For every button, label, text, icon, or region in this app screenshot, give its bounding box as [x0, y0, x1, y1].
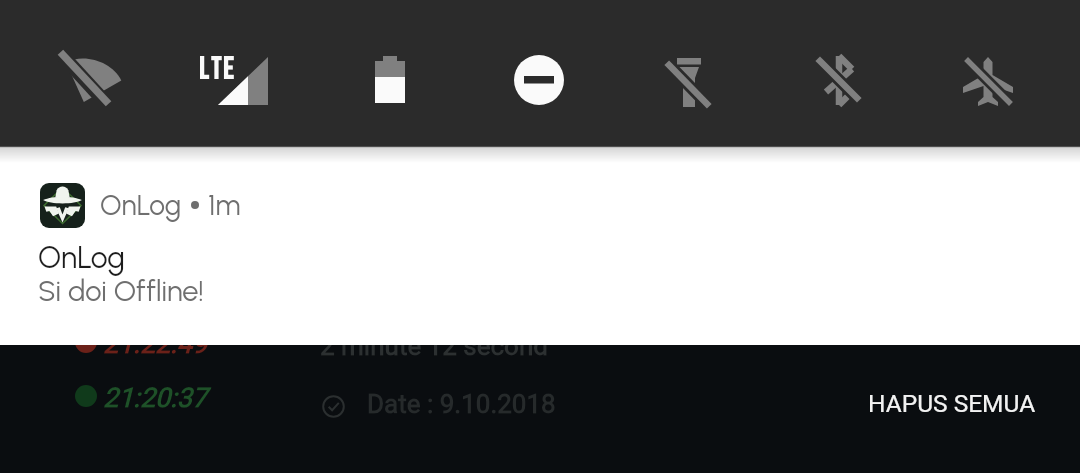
- staticText: Si doi Offline!: [38, 273, 204, 308]
- staticText: Date : 9.10.2018: [367, 389, 556, 419]
- button[interactable]: HAPUS SEMUA: [848, 377, 1056, 430]
- staticText: 21:22:49: [103, 328, 208, 360]
- button[interactable]: OnLog: [0, 146, 1080, 345]
- staticText: 1m: [208, 188, 241, 222]
- button[interactable]: Flashlight off: [618, 0, 772, 146]
- staticText: 2 minute 12 second: [320, 331, 548, 361]
- button[interactable]: Battery: [310, 0, 464, 146]
- button[interactable]: Bluetooth off: [772, 0, 926, 146]
- button[interactable]: Mobile data LTE: [155, 0, 310, 146]
- button[interactable]: Wi-Fi off: [0, 0, 155, 146]
- staticText: OnLog: [100, 188, 182, 222]
- staticText: HAPUS SEMUA: [868, 389, 1036, 418]
- staticText: OnLog: [38, 239, 125, 275]
- button[interactable]: Do not disturb: [464, 0, 618, 146]
- button[interactable]: Airplane mode off: [926, 0, 1080, 146]
- staticText: 21:20:37: [103, 382, 208, 414]
